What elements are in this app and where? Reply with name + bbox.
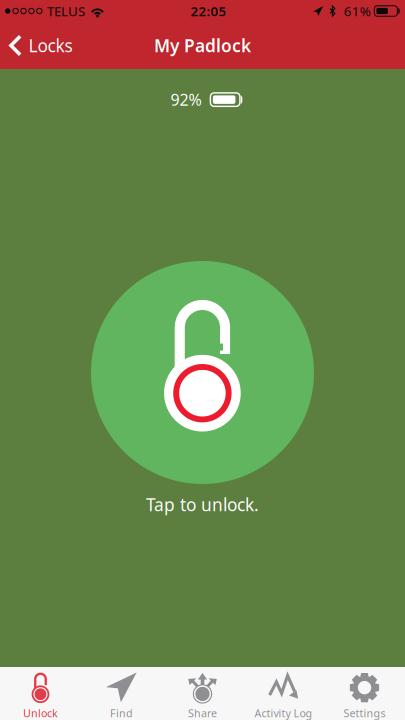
staticText: Locks	[28, 34, 72, 57]
staticText: Find	[110, 706, 133, 720]
staticText: Activity Log	[254, 706, 312, 720]
button[interactable]: Share	[162, 667, 243, 720]
button[interactable]: Find	[81, 667, 162, 720]
staticText: 92%	[170, 89, 201, 110]
staticText: 22:05	[191, 2, 227, 20]
button[interactable]: Activity Log	[243, 667, 324, 720]
button[interactable]: Unlock	[0, 667, 81, 720]
button[interactable]: Tap to unlock.	[91, 261, 314, 516]
button[interactable]: Settings	[324, 667, 405, 720]
staticText: My Padlock	[154, 34, 251, 57]
button[interactable]: Locks	[0, 22, 82, 69]
staticText: 61%	[344, 2, 371, 20]
staticText: Tap to unlock.	[146, 493, 259, 516]
staticText: Share	[188, 706, 217, 720]
staticText: Unlock	[23, 706, 58, 720]
staticText: TELUS	[47, 2, 85, 20]
staticText: Settings	[343, 706, 385, 720]
